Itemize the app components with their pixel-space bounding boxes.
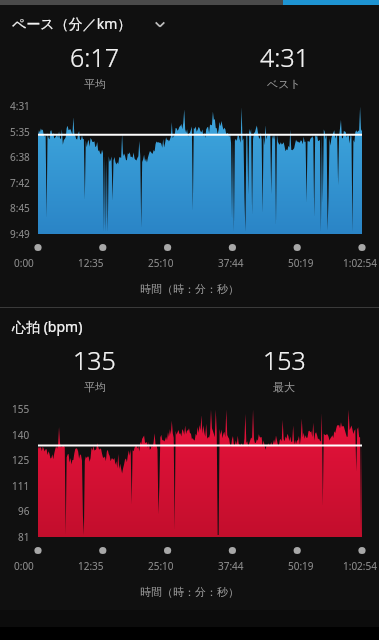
staticText: 6:17 (70, 40, 119, 74)
staticText: 96 (18, 504, 30, 518)
staticText: 7:42 (10, 176, 30, 190)
staticText: 最大 (273, 380, 295, 394)
staticText: 1:02:54 (343, 559, 377, 573)
staticText: 25:10 (148, 256, 174, 270)
staticText: 37:44 (218, 559, 244, 573)
staticText: 平均 (84, 77, 106, 91)
button[interactable] (0, 402, 379, 544)
staticText: 時間（時：分：秒） (0, 282, 379, 296)
staticText: ベスト (267, 77, 301, 91)
staticText: 111 (12, 479, 30, 493)
staticText: 12:35 (78, 559, 104, 573)
button[interactable]: 心拍 (bpm) (0, 315, 379, 338)
staticText: 37:44 (218, 256, 244, 270)
staticText: 25:10 (148, 559, 174, 573)
staticText: 5:35 (10, 125, 30, 139)
staticText: 135 (73, 343, 116, 377)
staticText: 4:31 (260, 40, 309, 74)
staticText: ペース（分／km） (12, 14, 132, 33)
staticText: 153 (263, 343, 306, 377)
button[interactable]: ペース（分／km） (0, 12, 379, 35)
staticText: 時間（時：分：秒） (0, 585, 379, 599)
staticText: 6:38 (10, 150, 30, 164)
staticText: 4:31 (10, 99, 30, 113)
staticText: 155 (12, 402, 30, 416)
staticText: 0:00 (14, 256, 34, 270)
button[interactable] (0, 99, 379, 241)
staticText: 125 (12, 453, 30, 467)
staticText: 心拍 (bpm) (12, 317, 83, 336)
staticText: 0:00 (14, 559, 34, 573)
staticText: 12:35 (78, 256, 104, 270)
staticText: 50:19 (288, 256, 314, 270)
staticText: 50:19 (288, 559, 314, 573)
other: Change metric (152, 16, 168, 32)
staticText: 平均 (84, 380, 106, 394)
staticText: 9:49 (10, 227, 30, 241)
staticText: 1:02:54 (343, 256, 377, 270)
staticText: 81 (18, 530, 30, 544)
staticText: 140 (12, 428, 30, 442)
staticText: 8:45 (10, 201, 30, 215)
